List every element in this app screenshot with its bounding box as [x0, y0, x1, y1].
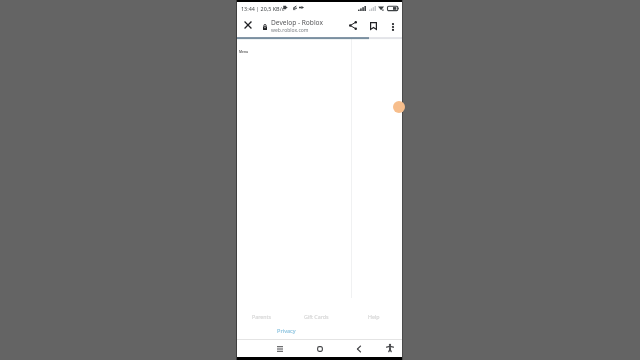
button[interactable]: Accessibility	[384, 342, 396, 354]
staticText: web.roblox.com	[271, 27, 309, 34]
button[interactable]: Recent apps	[274, 343, 286, 355]
button[interactable]: Bookmark	[366, 18, 381, 33]
button[interactable]: Privacy	[277, 327, 296, 335]
button[interactable]: More options	[385, 19, 400, 34]
button[interactable]: Help	[368, 313, 380, 320]
staticText: Menu	[239, 50, 249, 54]
button[interactable]: Gift Cards	[304, 313, 329, 320]
button[interactable]: Parents	[252, 313, 271, 320]
staticText: 13:44 | 20,5 KB/c	[241, 5, 285, 12]
button[interactable]: Share	[345, 18, 360, 33]
button[interactable]: Home	[314, 343, 326, 355]
button[interactable]: Back	[353, 343, 365, 355]
button[interactable]: Close	[240, 17, 256, 33]
staticText: Develop - Roblox	[271, 18, 323, 27]
button[interactable]: Chat support	[393, 101, 405, 113]
